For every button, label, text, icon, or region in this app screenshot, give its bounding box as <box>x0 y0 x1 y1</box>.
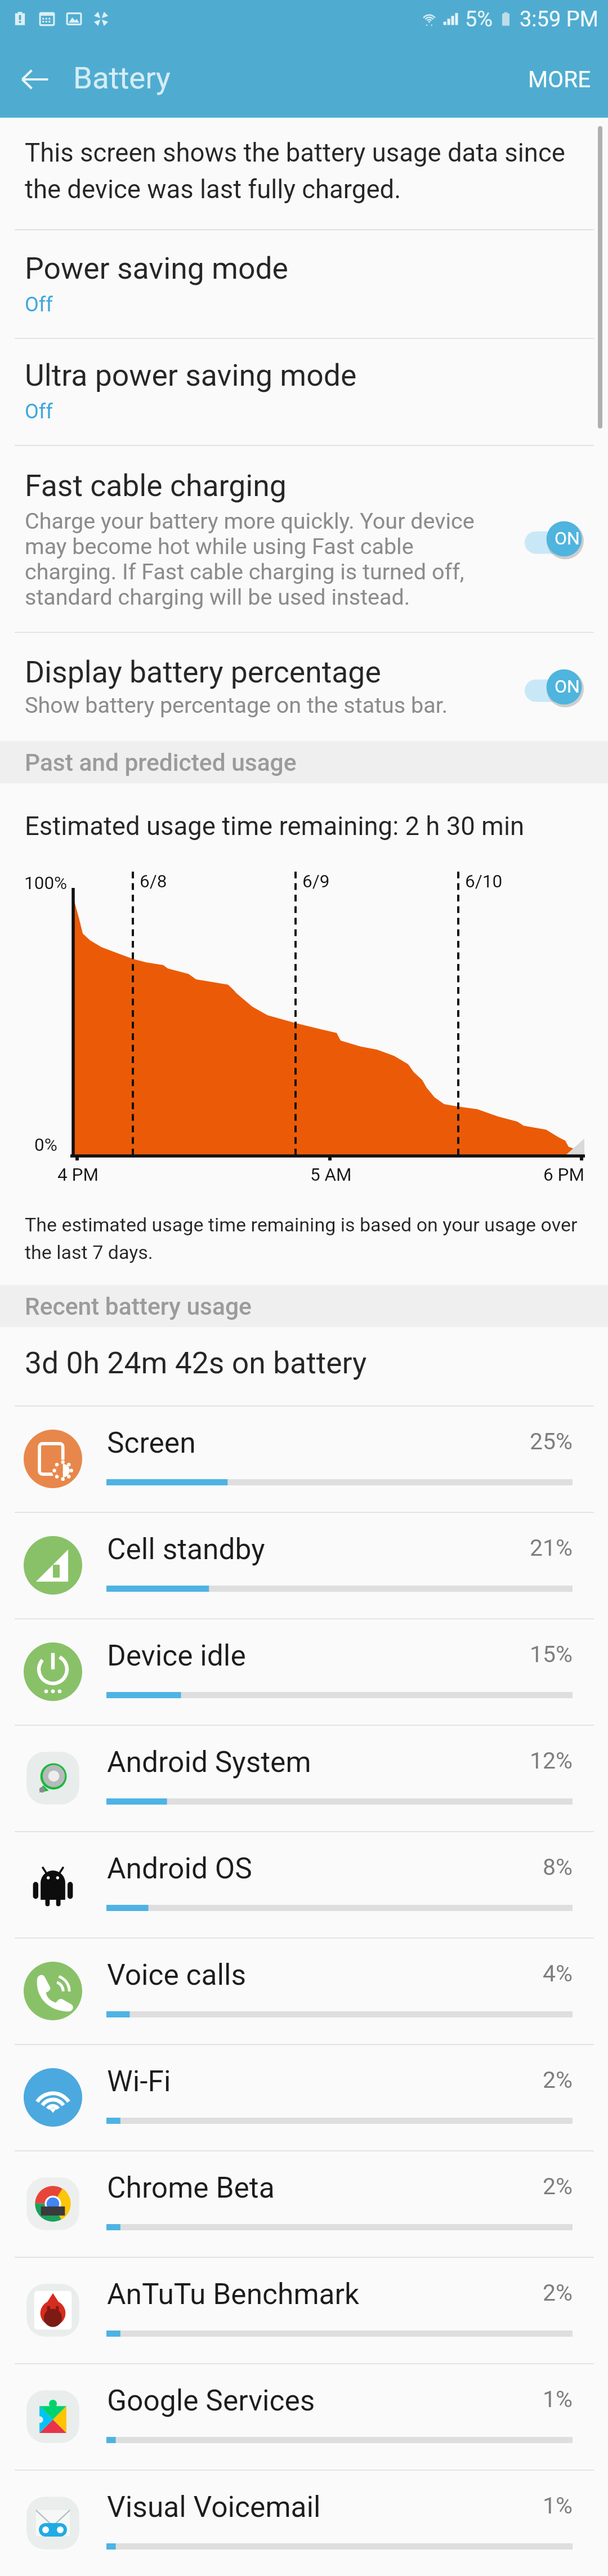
staticText: Fast cable charging <box>25 468 287 503</box>
button[interactable]: Android OS <box>0 1832 608 1937</box>
staticText: The estimated usage time remaining is ba… <box>25 1213 588 1264</box>
staticText: Chrome Beta <box>107 2171 275 2204</box>
button[interactable]: MORE <box>511 51 608 107</box>
button[interactable]: Power saving mode <box>0 230 608 338</box>
button[interactable]: On <box>525 520 583 557</box>
staticText: Past and predicted usage <box>25 749 297 777</box>
staticText: 2% <box>495 2173 573 2200</box>
button[interactable]: Navigate up <box>9 53 61 105</box>
staticText: 6/8 <box>140 871 167 892</box>
staticText: 1% <box>495 2492 573 2519</box>
button[interactable]: Fast cable charging <box>0 446 608 632</box>
staticText: ON <box>555 528 580 549</box>
staticText: 12% <box>495 1747 573 1774</box>
button[interactable]: Screen <box>0 1407 608 1512</box>
button[interactable]: Display battery percentage <box>0 633 608 741</box>
button[interactable]: On <box>525 668 583 706</box>
staticText: ON <box>555 676 580 697</box>
staticText: 2% <box>495 2279 573 2306</box>
staticText: 6/9 <box>302 871 330 892</box>
staticText: This screen shows the battery usage data… <box>25 138 582 204</box>
staticText: 4% <box>495 1960 573 1987</box>
button[interactable]: Android System <box>0 1726 608 1831</box>
staticText: 3d 0h 24m 42s on battery <box>25 1345 367 1381</box>
staticText: Visual Voicemail <box>107 2490 321 2524</box>
staticText: Power saving mode <box>25 251 288 286</box>
staticText: Battery <box>73 60 171 96</box>
staticText: Estimated usage time remaining: 2 h 30 m… <box>25 811 525 841</box>
button[interactable]: AnTuTu Benchmark <box>0 2258 608 2363</box>
button[interactable]: Voice calls <box>0 1939 608 2044</box>
staticText: 6/10 <box>465 871 503 892</box>
staticText: 1% <box>495 2386 573 2413</box>
staticText: Google Services <box>107 2383 315 2417</box>
staticText: Off <box>25 293 53 316</box>
staticText: Device idle <box>107 1639 246 1672</box>
staticText: 4 PM <box>57 1164 99 1185</box>
staticText: Recent battery usage <box>25 1293 252 1321</box>
staticText: 100% <box>24 873 68 894</box>
button[interactable]: Google Services <box>0 2364 608 2470</box>
staticText: 6 PM <box>543 1164 584 1185</box>
button[interactable]: Cell standby <box>0 1513 608 1618</box>
button[interactable]: Device idle <box>0 1619 608 1725</box>
button[interactable]: Visual Voicemail <box>0 2471 608 2576</box>
staticText: AnTuTu Benchmark <box>107 2277 360 2311</box>
staticText: 5 AM <box>310 1164 352 1185</box>
staticText: Show battery percentage on the status ba… <box>25 692 489 718</box>
staticText: Android System <box>107 1745 311 1779</box>
staticText: Android OS <box>107 1851 252 1885</box>
staticText: Charge your battery more quickly. Your d… <box>25 508 489 610</box>
staticText: 0% <box>34 1135 57 1155</box>
staticText: 15% <box>495 1641 573 1668</box>
staticText: 3:59 PM <box>520 7 598 32</box>
staticText: Wi-Fi <box>107 2064 171 2098</box>
button[interactable]: Chrome Beta <box>0 2151 608 2257</box>
staticText: Cell standby <box>107 1532 265 1566</box>
staticText: MORE <box>528 66 591 92</box>
button[interactable]: Ultra power saving mode <box>0 339 608 445</box>
staticText: Screen <box>107 1426 196 1459</box>
staticText: Ultra power saving mode <box>25 358 357 393</box>
staticText: 25% <box>495 1428 573 1455</box>
staticText: Voice calls <box>107 1958 247 1992</box>
staticText: 8% <box>495 1854 573 1881</box>
staticText: 5% <box>465 7 493 32</box>
staticText: 21% <box>495 1534 573 1561</box>
button[interactable]: Wi-Fi <box>0 2045 608 2150</box>
staticText: 2% <box>495 2066 573 2093</box>
staticText: Off <box>25 400 53 423</box>
staticText: Display battery percentage <box>25 654 381 690</box>
